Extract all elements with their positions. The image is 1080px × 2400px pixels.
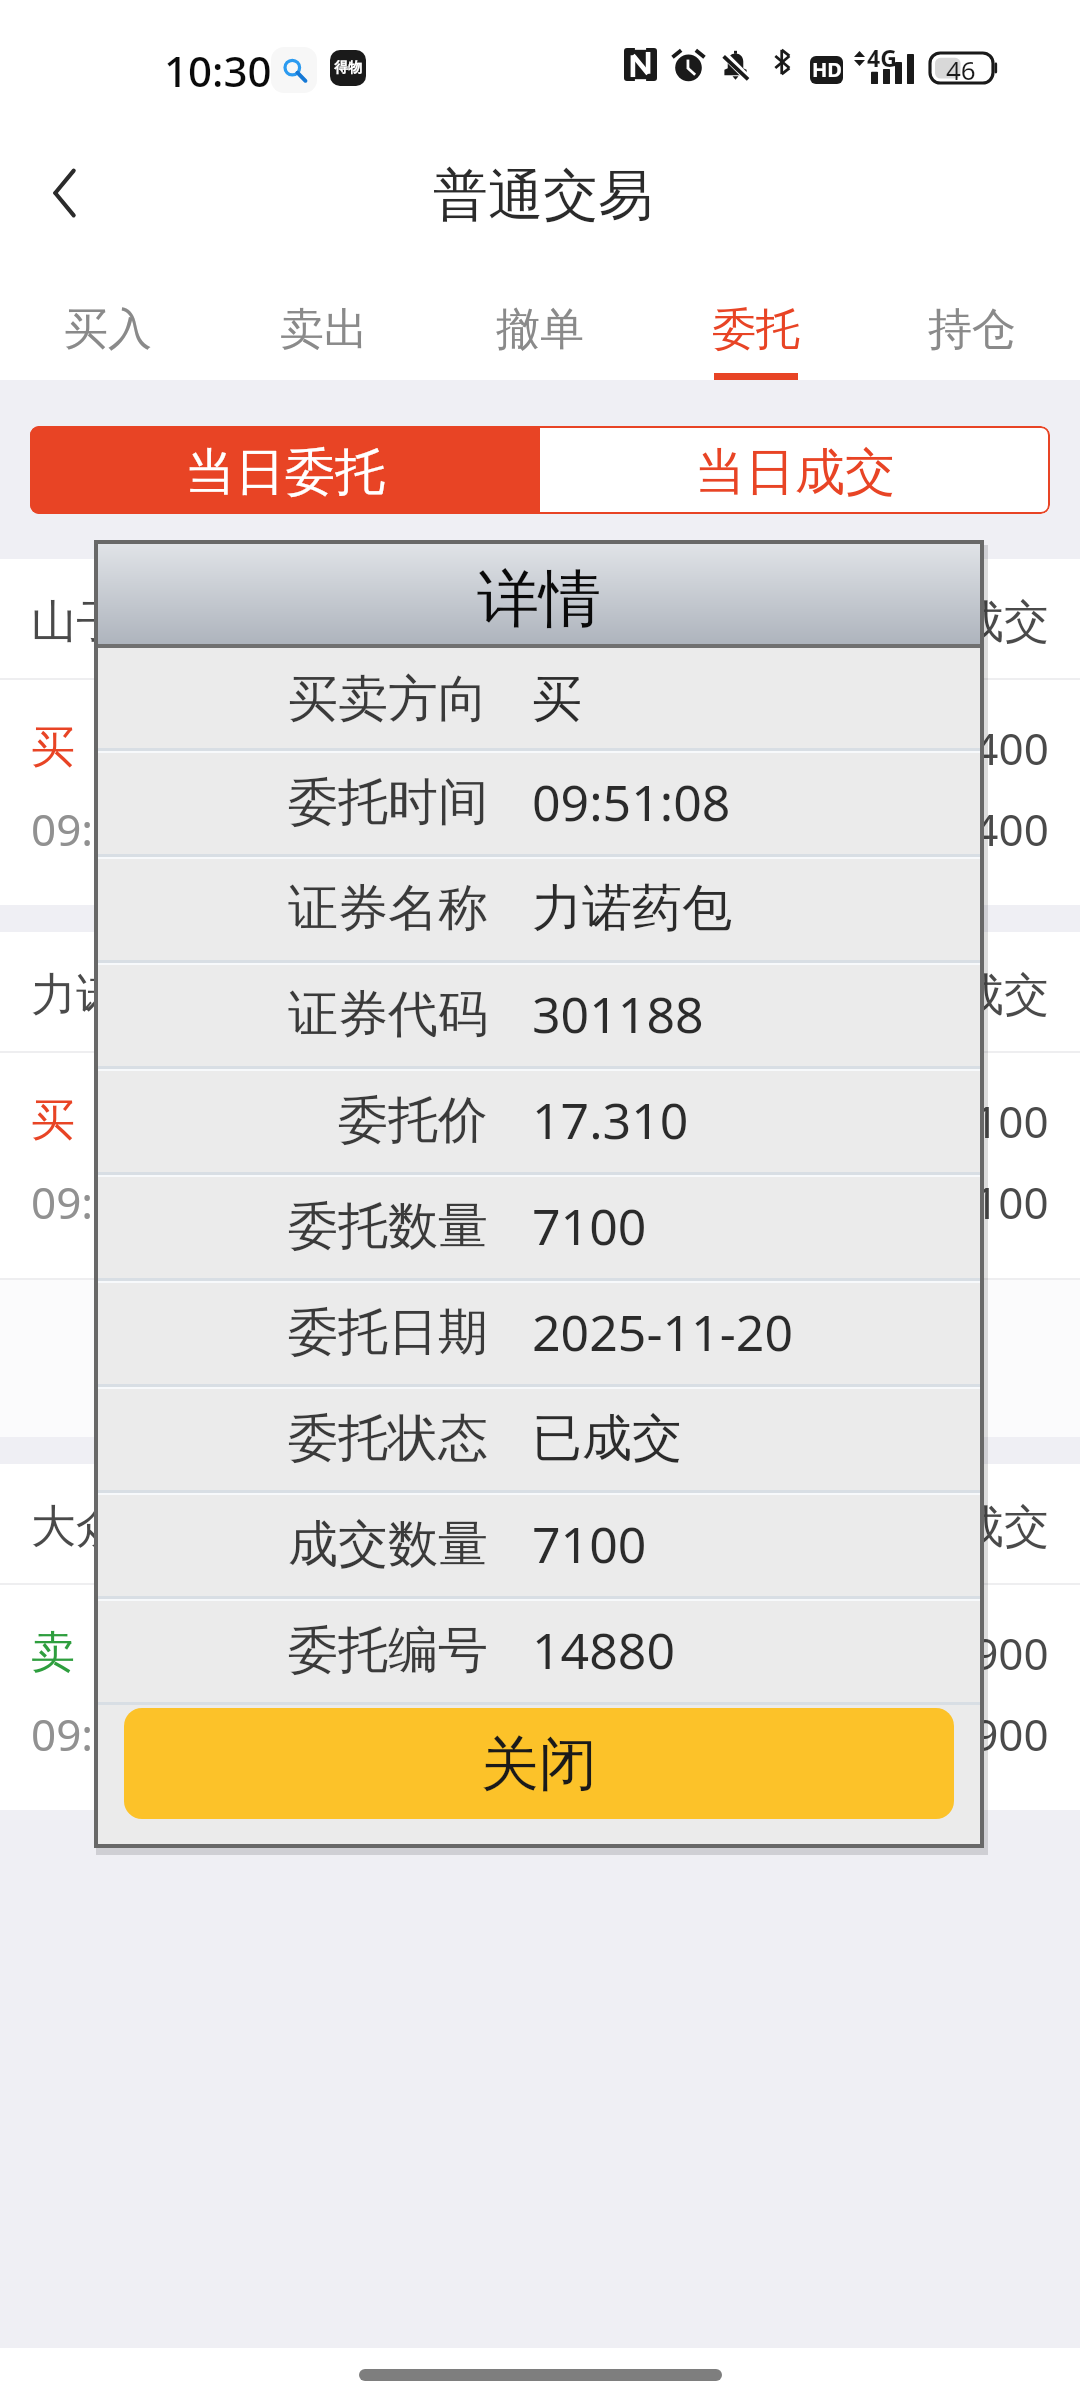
button[interactable]: 撤单 [432,280,648,380]
staticText: 买卖方向 [288,668,488,731]
staticText: 大众交通 [31,1499,211,1556]
staticText: 已成交 [914,967,1049,1024]
staticText: HD [812,56,842,83]
staticText: 委托时间 [288,771,488,834]
staticText: 3900 [948,1623,1049,1683]
staticText: 09:51:08 [31,1172,206,1232]
staticText: 09:51:27 [31,799,206,859]
staticText: 委托日期 [288,1301,488,1364]
staticText: 3900 [948,1704,1049,1764]
staticText: 卖 [31,1625,75,1680]
staticText: 详情 [477,560,601,638]
staticText: 已成交 [914,594,1049,651]
staticText: 已成交 [532,1407,682,1470]
button[interactable]: 买入 [0,280,216,380]
button[interactable]: App notification [330,50,366,86]
button[interactable]: 当日委托 [30,426,540,514]
staticText: 当日委托 [185,441,385,504]
staticText: 买入 [64,302,152,357]
staticText: 09:47:21 [31,1704,206,1764]
staticText: 已成交 [914,1499,1049,1556]
staticText: 09:51:08 [532,768,731,836]
staticText: 10:30 [164,42,272,99]
staticText: 10400 [923,799,1049,859]
staticText: 力诺药包 [532,877,732,940]
staticText: 当日成交 [695,441,895,504]
button[interactable]: Search [271,47,317,93]
staticText: 14880 [532,1616,675,1684]
staticText: 委托编号 [288,1619,488,1682]
staticText: 关闭 [481,1728,597,1801]
button[interactable]: 山子高科 [0,559,1080,905]
staticText: 301188 [532,980,704,1048]
staticText: 7100 [532,1510,647,1578]
staticText: 委托价 [338,1089,488,1152]
staticText: 力诺药包 [31,967,211,1024]
button[interactable]: 当日成交 [540,426,1050,514]
staticText: 买 [532,668,582,731]
staticText: 撤单 [496,302,584,357]
staticText: 4G [867,42,897,73]
staticText: 17.310 [532,1086,689,1154]
button[interactable]: Back [12,138,122,248]
staticText: 卖出 [280,302,368,357]
staticText: 买 [31,1093,75,1148]
button[interactable]: 大众交通 [0,1464,1080,1810]
staticText: 成交数量 [288,1513,488,1576]
staticText: 委托数量 [288,1195,488,1258]
button[interactable]: 持仓 [864,280,1080,380]
staticText: 持仓 [928,302,1016,357]
staticText: 7100 [532,1192,647,1260]
staticText: 2025-11-20 [532,1298,793,1366]
staticText: 46 [946,52,976,82]
button[interactable]: 卖出 [216,280,432,380]
staticText: 证券名称 [288,877,488,940]
button[interactable]: 委托 [648,280,864,380]
staticText: 得物 [334,59,362,77]
staticText: 7100 [948,1091,1049,1151]
staticText: 买 [31,720,75,775]
staticText: 委托 [712,302,800,357]
staticText: 7100 [948,1172,1049,1232]
staticText: 山子高科 [31,594,211,651]
button[interactable]: 力诺药包 [0,932,1080,1278]
staticText: 证券代码 [288,983,488,1046]
staticText: 委托状态 [288,1407,488,1470]
staticText: 普通交易 [433,161,653,230]
button[interactable]: 关闭 [124,1708,954,1819]
staticText: 10400 [923,718,1049,778]
